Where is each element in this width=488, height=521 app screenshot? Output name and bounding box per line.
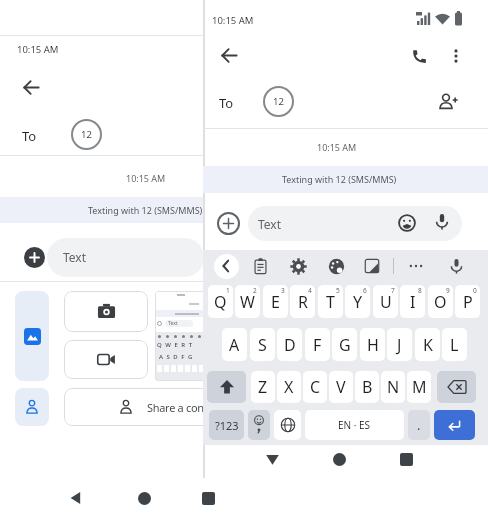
button[interactable]: V xyxy=(329,371,353,403)
button[interactable]: EN · ES xyxy=(305,410,404,440)
button[interactable]: X xyxy=(277,371,301,403)
button[interactable]: Z xyxy=(251,371,275,403)
button[interactable] xyxy=(15,291,49,381)
staticText: Share a contact xyxy=(147,400,223,415)
button[interactable] xyxy=(64,291,148,332)
staticText: A xyxy=(229,334,240,356)
button[interactable] xyxy=(248,206,462,241)
staticText: 10:15 AM xyxy=(212,14,254,27)
button[interactable]: H xyxy=(360,328,385,361)
button[interactable]: Y xyxy=(345,285,370,318)
button[interactable]: Q xyxy=(208,285,233,318)
button[interactable] xyxy=(434,410,475,440)
staticText: 1 xyxy=(226,286,230,295)
button[interactable] xyxy=(411,48,428,65)
button[interactable]: N xyxy=(381,371,405,403)
button[interactable]: F xyxy=(305,328,330,361)
button[interactable] xyxy=(438,92,458,112)
button[interactable]: K xyxy=(415,328,440,361)
staticText: M xyxy=(412,376,427,398)
button[interactable]: 12 xyxy=(71,119,102,150)
button[interactable] xyxy=(408,258,424,274)
staticText: 0 xyxy=(473,286,477,295)
staticText: Text xyxy=(168,320,178,327)
button[interactable] xyxy=(221,47,238,64)
button[interactable] xyxy=(24,247,45,268)
button[interactable] xyxy=(248,410,270,440)
button[interactable] xyxy=(328,258,345,275)
button[interactable]: L xyxy=(442,328,467,361)
button[interactable] xyxy=(433,213,451,231)
button[interactable] xyxy=(398,214,416,232)
staticText: Texting with 12 (SMS/MMS) xyxy=(282,173,397,185)
staticText: Y xyxy=(353,291,363,313)
button[interactable]: . xyxy=(408,410,430,440)
button[interactable] xyxy=(437,371,476,403)
button[interactable]: T xyxy=(318,285,343,318)
button[interactable] xyxy=(15,388,49,426)
staticText: Text xyxy=(258,216,282,232)
staticText: B xyxy=(362,376,373,398)
staticText: G xyxy=(339,334,351,356)
button[interactable] xyxy=(290,258,307,275)
button[interactable]: S xyxy=(250,328,275,361)
staticText: O xyxy=(434,291,447,313)
staticText: 9 xyxy=(446,286,450,295)
staticText: Q xyxy=(214,291,227,313)
button[interactable] xyxy=(333,453,346,466)
staticText: Text xyxy=(63,249,87,265)
button[interactable]: G xyxy=(332,328,357,361)
button[interactable]: O xyxy=(428,285,453,318)
button[interactable] xyxy=(64,388,264,426)
staticText: J xyxy=(397,334,402,356)
button[interactable]: P xyxy=(455,285,480,318)
staticText: P xyxy=(463,291,473,313)
button[interactable]: 12 xyxy=(263,86,294,117)
button[interactable] xyxy=(448,48,464,64)
button[interactable]: Text xyxy=(155,291,206,381)
button[interactable] xyxy=(69,491,83,505)
staticText: D xyxy=(284,334,296,356)
staticText: 10:15 AM xyxy=(17,43,59,56)
button[interactable] xyxy=(252,258,269,275)
button[interactable]: R xyxy=(290,285,315,318)
staticText: T xyxy=(326,291,335,313)
button[interactable] xyxy=(47,238,204,277)
staticText: L xyxy=(450,334,459,356)
button[interactable] xyxy=(214,254,239,279)
staticText: N xyxy=(387,376,400,398)
staticText: 7 xyxy=(391,286,395,295)
button[interactable] xyxy=(364,258,380,274)
staticText: Texting with 12 (SMS/MMS) xyxy=(88,204,203,216)
staticText: V xyxy=(336,376,346,398)
staticText: E xyxy=(271,291,280,313)
button[interactable] xyxy=(217,212,240,235)
button[interactable]: W xyxy=(235,285,260,318)
button[interactable] xyxy=(207,371,246,403)
button[interactable]: A xyxy=(222,328,247,361)
button[interactable] xyxy=(202,492,215,505)
button[interactable]: D xyxy=(277,328,302,361)
button[interactable]: C xyxy=(303,371,327,403)
staticText: 5 xyxy=(336,286,340,295)
button[interactable]: J xyxy=(387,328,412,361)
button[interactable]: M xyxy=(407,371,431,403)
button[interactable] xyxy=(265,452,280,467)
button[interactable] xyxy=(274,410,301,440)
staticText: . xyxy=(417,416,421,434)
staticText: S xyxy=(258,334,267,356)
button[interactable]: I xyxy=(400,285,425,318)
staticText: H xyxy=(367,334,379,356)
button[interactable]: U xyxy=(373,285,398,318)
button[interactable] xyxy=(448,258,465,275)
staticText: X xyxy=(284,376,294,398)
button[interactable]: ?123 xyxy=(209,410,244,440)
button[interactable]: B xyxy=(355,371,379,403)
button[interactable] xyxy=(400,453,413,466)
button[interactable] xyxy=(138,492,151,505)
button[interactable]: E xyxy=(263,285,288,318)
staticText: A S D F G xyxy=(159,353,194,361)
staticText: EN · ES xyxy=(338,418,371,432)
button[interactable] xyxy=(64,340,148,379)
button[interactable] xyxy=(23,79,40,96)
